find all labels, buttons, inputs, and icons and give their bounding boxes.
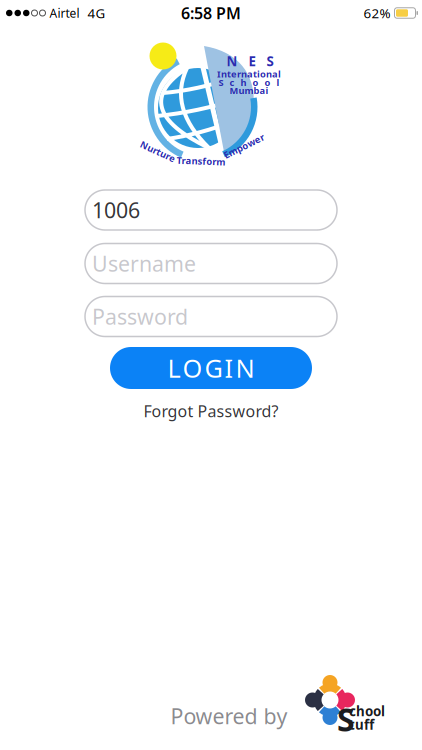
- button[interactable]: LOGIN: [110, 347, 312, 389]
- staticText: Nurture: [139, 145, 177, 158]
- staticText: Empower: [222, 140, 266, 152]
- staticText: Username: [92, 249, 196, 278]
- staticText: International: [217, 68, 281, 80]
- button[interactable]: Password: [85, 296, 337, 336]
- staticText: N E S: [226, 52, 273, 70]
- button[interactable]: 1006: [85, 190, 337, 230]
- staticText: Password: [92, 302, 188, 331]
- staticText: 62%: [363, 4, 390, 22]
- button[interactable]: Username: [85, 243, 337, 283]
- staticText: Powered by: [170, 702, 287, 730]
- staticText: S: [337, 698, 355, 740]
- staticText: Forgot Password?: [143, 400, 278, 422]
- staticText: Transform: [176, 155, 225, 167]
- staticText: Airtel: [49, 5, 79, 21]
- staticText: 1006: [92, 196, 140, 224]
- staticText: 4G: [87, 4, 105, 22]
- staticText: LOGIN: [167, 351, 254, 385]
- staticText: tuff: [349, 716, 374, 733]
- staticText: Mumbai: [229, 84, 268, 97]
- button[interactable]: Forgot Password?: [143, 400, 278, 422]
- staticText: 6:58 PM: [181, 2, 241, 24]
- staticText: S c h o o l: [218, 76, 279, 89]
- staticText: chool: [349, 702, 385, 720]
